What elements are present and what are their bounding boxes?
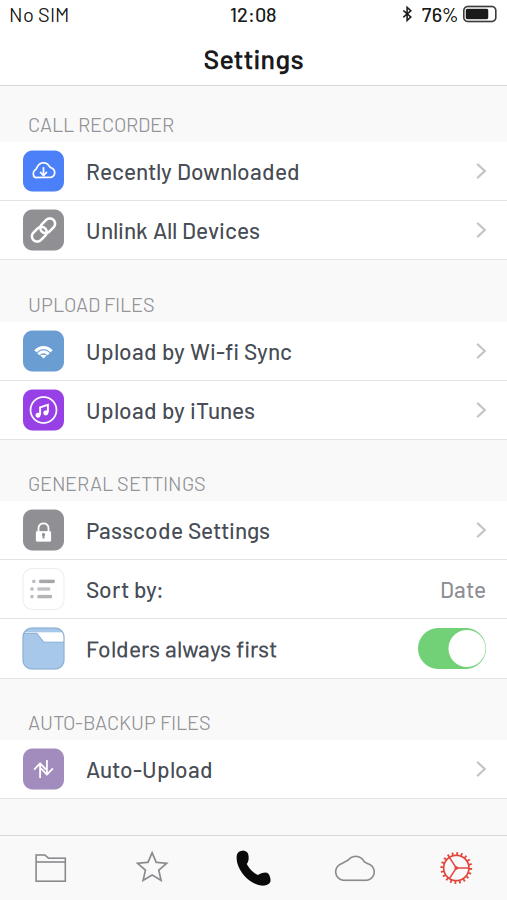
staticText: Passcode Settings	[86, 516, 270, 544]
button[interactable]: Settings	[406, 836, 507, 899]
staticText: Recently Downloaded	[86, 157, 300, 185]
staticText: 76%	[422, 2, 459, 26]
button[interactable]: Recordings	[203, 836, 304, 899]
button[interactable]: Recently Downloaded	[0, 142, 507, 201]
staticText: No SIM	[9, 2, 69, 26]
staticText: Date	[440, 575, 486, 603]
button[interactable]: Folders always first	[0, 619, 507, 679]
staticText: Upload by iTunes	[86, 396, 255, 424]
button[interactable]: Upload by Wi-fi Sync	[0, 322, 507, 381]
staticText: Sort by:	[86, 575, 164, 603]
staticText: AUTO-BACKUP FILES	[28, 710, 211, 734]
staticText: Settings	[203, 42, 303, 74]
button[interactable]: Favorites	[101, 836, 203, 899]
staticText: UPLOAD FILES	[28, 292, 155, 316]
staticText: Unlink All Devices	[86, 216, 260, 244]
staticText: CALL RECORDER	[28, 112, 174, 136]
staticText: Folders always first	[86, 635, 277, 662]
button[interactable]: Sort by:	[0, 560, 507, 619]
staticText: GENERAL SETTINGS	[28, 471, 206, 495]
button[interactable]: Cloud	[304, 836, 406, 899]
button[interactable]: Auto-Upload	[0, 740, 507, 799]
button[interactable]: Files	[0, 836, 101, 899]
button[interactable]: Upload by iTunes	[0, 381, 507, 440]
staticText: Upload by Wi-fi Sync	[86, 337, 292, 365]
button[interactable]: Unlink All Devices	[0, 201, 507, 260]
staticText: 12:08	[230, 2, 277, 26]
button[interactable]: Passcode Settings	[0, 501, 507, 560]
staticText: Auto-Upload	[86, 755, 213, 783]
